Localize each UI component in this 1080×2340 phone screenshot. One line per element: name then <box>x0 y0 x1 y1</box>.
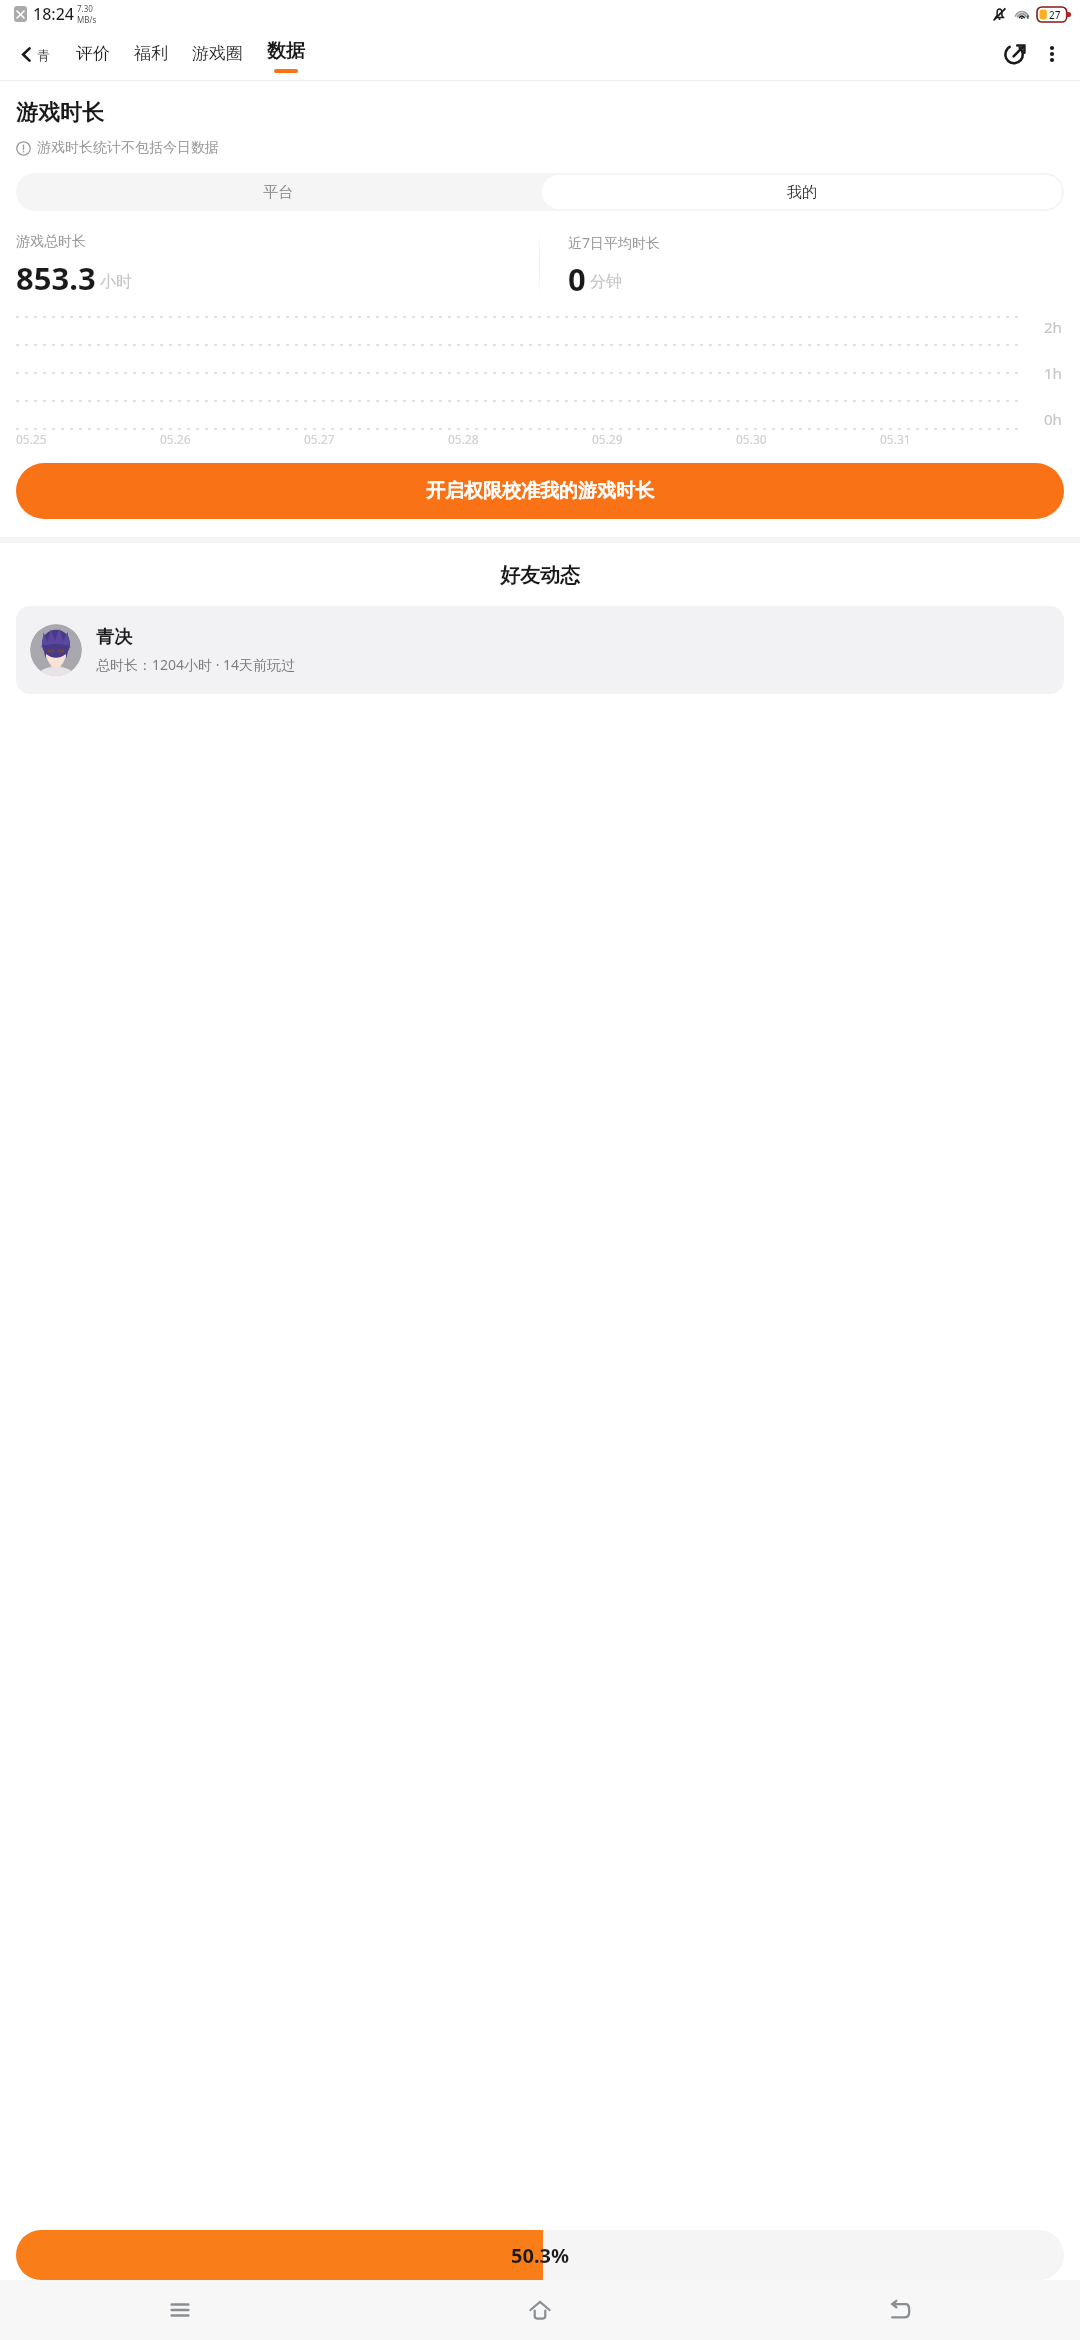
staticText: 27 <box>1049 8 1061 22</box>
staticText: 开启权限校准我的游戏时长 <box>426 479 654 503</box>
staticText: 0 <box>568 258 586 295</box>
button[interactable]: 青决 <box>16 606 1064 694</box>
staticText: 游戏时长统计不包括今日数据 <box>37 139 219 157</box>
staticText: 游戏圈 <box>192 43 243 64</box>
staticText: 青决 <box>96 626 132 649</box>
staticText: 游戏时长 <box>16 99 104 127</box>
button[interactable]: Back <box>720 2280 1080 2340</box>
staticText: 05.28 <box>448 431 479 447</box>
button[interactable]: Back <box>0 38 54 71</box>
staticText: 853.3 <box>16 257 96 295</box>
button[interactable]: Recents <box>0 2280 360 2340</box>
staticText: 1h <box>1044 363 1062 383</box>
staticText: 近7日平均时长 <box>568 233 661 252</box>
staticText: 分钟 <box>590 272 622 292</box>
staticText: 数据 <box>267 39 305 63</box>
staticText: 好友动态 <box>0 563 1080 588</box>
button[interactable]: 开启权限校准我的游戏时长 <box>16 463 1064 519</box>
staticText: 05.29 <box>592 431 623 447</box>
staticText: 小时 <box>100 272 132 292</box>
staticText: 50.3% <box>511 2242 569 2269</box>
button[interactable]: 我的 <box>542 175 1062 209</box>
staticText: 7.30 <box>77 3 93 14</box>
button[interactable]: 数据 <box>255 28 317 80</box>
button[interactable]: 游戏圈 <box>180 28 255 80</box>
button[interactable]: 福利 <box>122 28 180 80</box>
staticText: 05.26 <box>160 431 191 447</box>
staticText: 05.27 <box>304 431 335 447</box>
staticText: 我的 <box>787 183 817 202</box>
button[interactable]: 50.3% <box>16 2230 1064 2280</box>
staticText: 05.31 <box>880 431 911 447</box>
staticText: 05.25 <box>16 431 47 447</box>
staticText: 0h <box>1044 409 1062 429</box>
staticText: 18:24 <box>33 3 74 25</box>
button[interactable]: 评价 <box>64 28 122 80</box>
staticText: MB/s <box>77 14 97 25</box>
button[interactable]: Home <box>360 2280 720 2340</box>
button[interactable]: Share <box>995 35 1034 74</box>
staticText: 游戏总时长 <box>16 233 86 251</box>
staticText: 青 <box>37 47 50 63</box>
staticText: 福利 <box>134 43 168 64</box>
staticText: 总时长：1204小时 · 14天前玩过 <box>96 655 296 674</box>
staticText: 评价 <box>76 43 110 64</box>
button[interactable]: 平台 <box>16 173 540 211</box>
staticText: 平台 <box>263 183 293 202</box>
button[interactable]: More options <box>1034 36 1080 72</box>
staticText: 2h <box>1044 317 1062 337</box>
staticText: 05.30 <box>736 431 767 447</box>
